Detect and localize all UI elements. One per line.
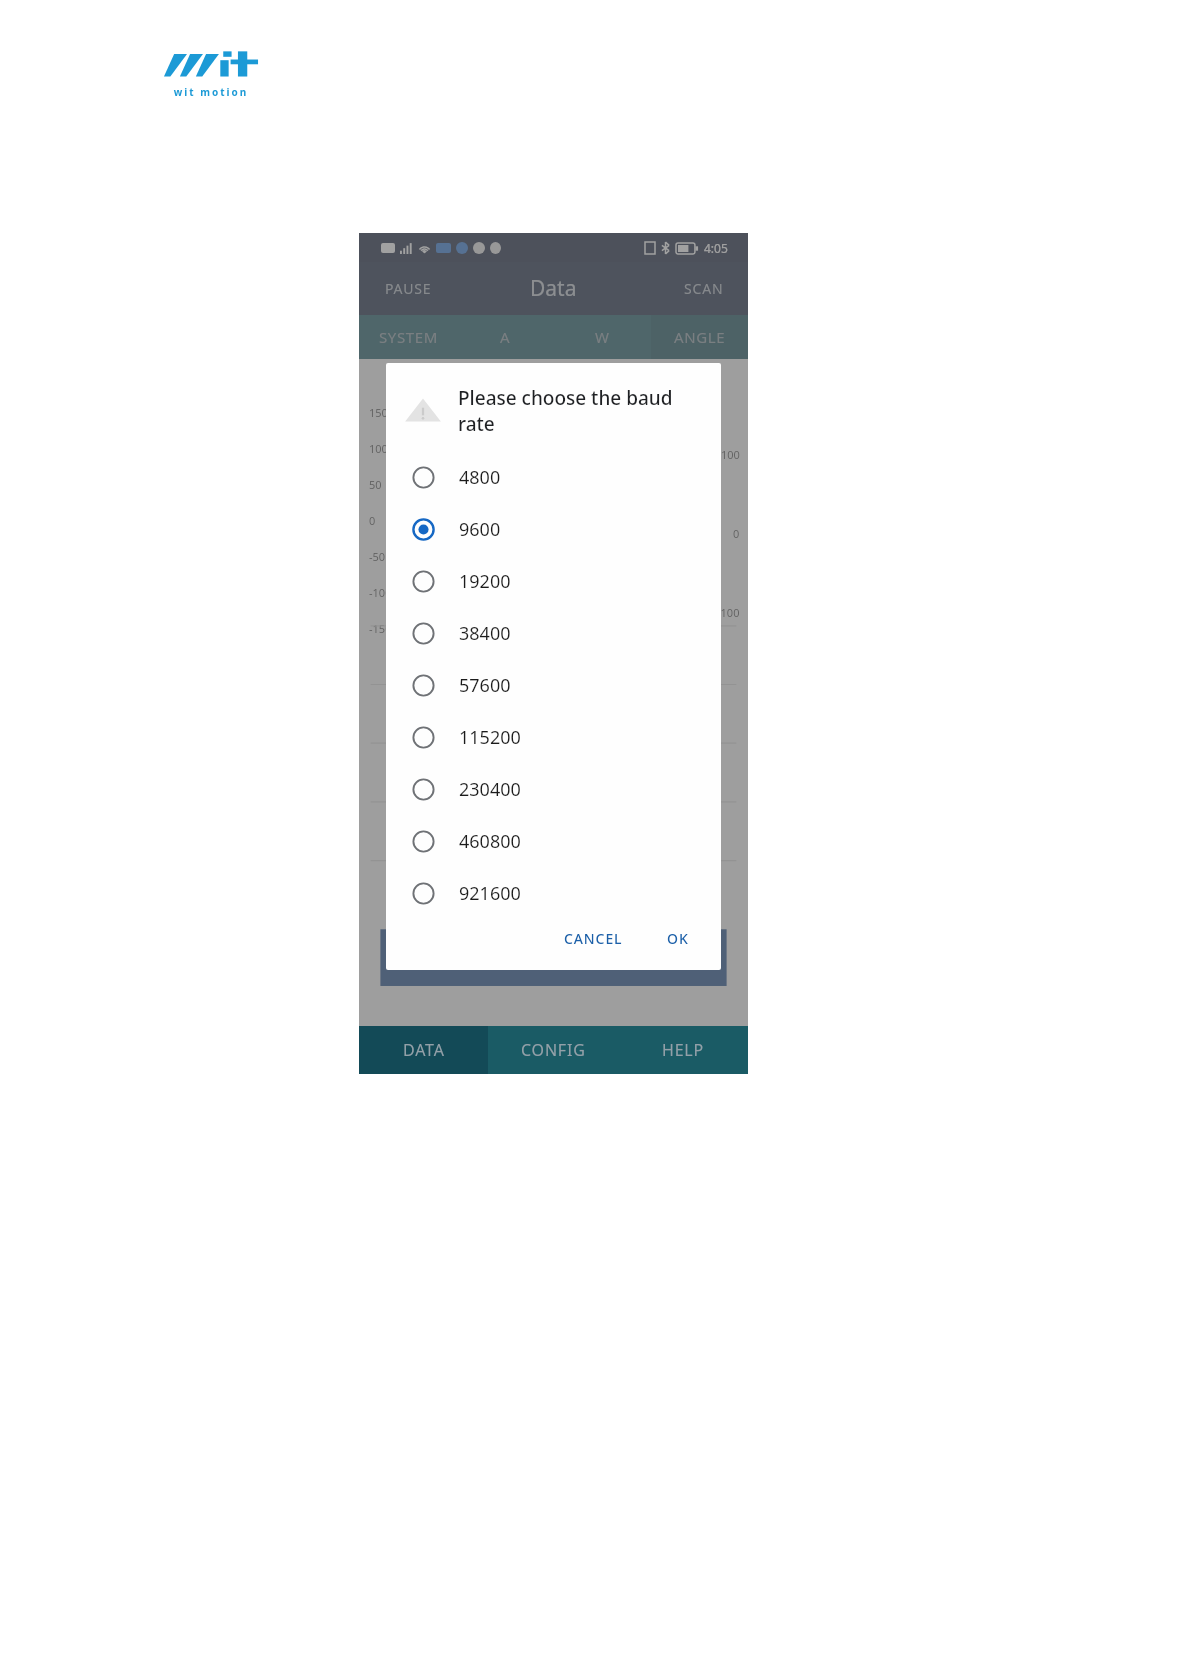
staticText: Data bbox=[530, 274, 577, 303]
staticText: 0 bbox=[733, 526, 740, 541]
staticText: Please choose the baud rate bbox=[458, 385, 695, 437]
staticText: 100 bbox=[721, 447, 740, 462]
button[interactable]: 460800 bbox=[386, 815, 721, 867]
staticText: -50 bbox=[369, 549, 386, 564]
staticText: 19200 bbox=[459, 569, 511, 594]
staticText: 0 bbox=[369, 513, 376, 528]
staticText: ANGLE bbox=[674, 327, 726, 347]
staticText: 9600 bbox=[459, 517, 501, 542]
staticText: wit motion bbox=[162, 85, 260, 99]
staticText: 460800 bbox=[459, 829, 521, 854]
button[interactable]: DATA bbox=[359, 1026, 488, 1074]
button[interactable]: 4800 bbox=[386, 451, 721, 503]
button[interactable]: 38400 bbox=[386, 607, 721, 659]
staticText: 230400 bbox=[459, 777, 521, 802]
button[interactable]: W bbox=[554, 315, 651, 359]
button[interactable]: CONFIG bbox=[488, 1026, 618, 1074]
button[interactable]: 19200 bbox=[386, 555, 721, 607]
staticText: 115200 bbox=[459, 725, 521, 750]
staticText: 4800 bbox=[459, 465, 501, 490]
staticText: PAUSE bbox=[385, 279, 432, 298]
button[interactable]: 115200 bbox=[386, 711, 721, 763]
staticText: W bbox=[595, 327, 610, 347]
staticText: CANCEL bbox=[564, 929, 623, 946]
staticText: 150 bbox=[369, 405, 388, 420]
button[interactable]: ANGLE bbox=[651, 315, 748, 359]
button[interactable]: SYSTEM bbox=[359, 315, 457, 359]
button[interactable]: CANCEL bbox=[554, 919, 633, 956]
staticText: SYSTEM bbox=[379, 327, 438, 347]
other: Warning bbox=[404, 391, 442, 429]
staticText: -150 bbox=[369, 621, 392, 636]
staticText: 100 bbox=[369, 441, 388, 456]
button[interactable]: 230400 bbox=[386, 763, 721, 815]
staticText: HELP bbox=[662, 1039, 705, 1061]
button[interactable]: OK bbox=[657, 919, 699, 956]
staticText: DATA bbox=[403, 1039, 445, 1061]
button[interactable]: 921600 bbox=[386, 867, 721, 919]
staticText: 50 bbox=[369, 477, 382, 492]
staticText: 57600 bbox=[459, 673, 511, 698]
button[interactable]: 9600 bbox=[386, 503, 721, 555]
staticText: 38400 bbox=[459, 621, 511, 646]
button[interactable]: 57600 bbox=[386, 659, 721, 711]
button[interactable]: HELP bbox=[618, 1026, 748, 1074]
button[interactable]: PAUSE bbox=[359, 265, 458, 312]
staticText: A bbox=[500, 327, 511, 347]
staticText: OK bbox=[667, 929, 689, 946]
staticText: 4:05 bbox=[704, 240, 728, 256]
staticText: SCAN bbox=[684, 279, 724, 298]
staticText: CONFIG bbox=[521, 1039, 586, 1061]
button[interactable]: A bbox=[457, 315, 554, 359]
staticText: -100 bbox=[717, 605, 740, 620]
button[interactable]: SCAN bbox=[660, 265, 748, 312]
staticText: -100 bbox=[369, 585, 392, 600]
staticText: 921600 bbox=[459, 881, 521, 906]
